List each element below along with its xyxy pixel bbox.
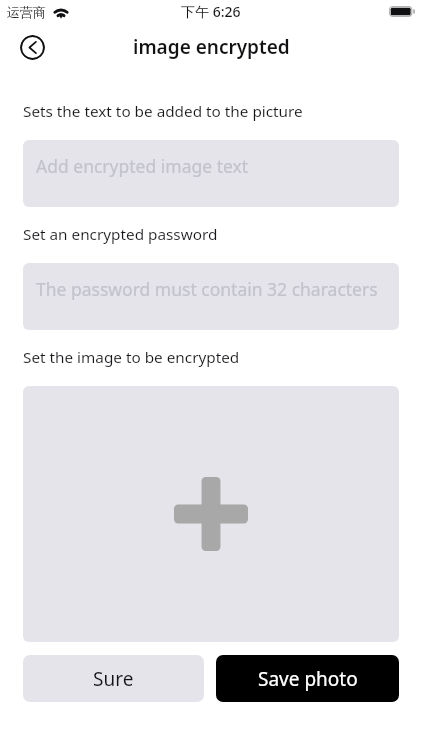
staticText: image encrypted xyxy=(133,34,290,60)
staticText: Sure xyxy=(93,666,134,692)
staticText: Add encrypted image text xyxy=(36,154,249,178)
staticText: The password must contain 32 characters xyxy=(36,277,378,301)
button[interactable]: The password must contain 32 characters xyxy=(23,263,399,330)
staticText: Set an encrypted password xyxy=(23,224,218,245)
button[interactable]: Save photo xyxy=(216,655,399,702)
button[interactable]: Add image xyxy=(23,386,399,642)
staticText: Save photo xyxy=(258,666,358,692)
staticText: Sets the text to be added to the picture xyxy=(23,101,303,122)
staticText: Set the image to be encrypted xyxy=(23,347,240,368)
staticText: 运营商 xyxy=(7,4,46,20)
button[interactable]: Sure xyxy=(23,655,204,702)
staticText: 下午 6:26 xyxy=(181,2,241,21)
button[interactable]: Back xyxy=(20,35,45,60)
button[interactable]: Add encrypted image text xyxy=(23,140,399,207)
